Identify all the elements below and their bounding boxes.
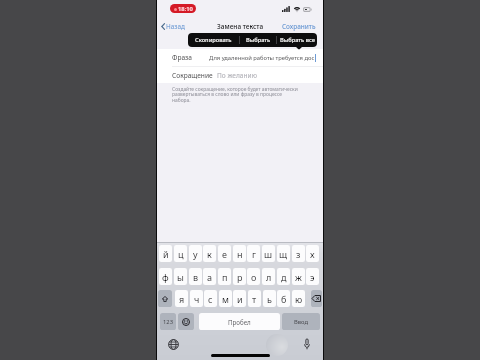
button[interactable]: щ — [277, 245, 290, 262]
button[interactable]: й — [159, 245, 172, 262]
staticText: Для удаленной работы требуется дос — [209, 54, 315, 62]
staticText: ц — [178, 248, 184, 260]
button[interactable]: ы — [174, 268, 187, 285]
button[interactable]: Shift — [158, 290, 172, 307]
staticText: ч — [194, 293, 200, 305]
staticText: й — [163, 248, 169, 260]
button[interactable]: у — [189, 245, 202, 262]
button[interactable]: Пробел — [199, 313, 280, 330]
button[interactable]: с — [204, 290, 217, 307]
button[interactable]: з — [292, 245, 305, 262]
staticText: б — [281, 293, 287, 305]
button[interactable]: ж — [292, 268, 305, 285]
button[interactable]: б — [277, 290, 290, 307]
staticText: ю — [295, 293, 303, 305]
staticText: ж — [295, 271, 302, 283]
button[interactable]: л — [262, 268, 275, 285]
button[interactable]: Change keyboard — [168, 339, 179, 350]
staticText: Скопировать — [195, 36, 232, 44]
button[interactable]: я — [175, 290, 188, 307]
button[interactable]: Backspace — [311, 290, 322, 307]
button[interactable]: ч — [190, 290, 203, 307]
button[interactable]: Выбрать — [240, 33, 276, 47]
staticText: н — [237, 248, 243, 260]
staticText: Пробел — [228, 318, 251, 326]
button[interactable]: а — [203, 268, 216, 285]
button[interactable]: Enter — [282, 313, 320, 330]
button[interactable]: к — [203, 245, 216, 262]
staticText: Выбрать — [246, 36, 271, 44]
staticText: Фраза — [172, 53, 192, 62]
button[interactable]: в — [189, 268, 202, 285]
button[interactable]: Сокращение — [157, 67, 323, 83]
button[interactable]: т — [248, 290, 261, 307]
staticText: ь — [267, 293, 272, 305]
staticText: Выбрать все — [280, 36, 315, 44]
button[interactable]: Emoji — [178, 313, 194, 330]
staticText: Ввод — [294, 318, 308, 326]
staticText: Создайте сокращение, которое будет автом… — [172, 86, 300, 104]
staticText: м — [222, 293, 229, 305]
staticText: щ — [279, 248, 288, 260]
button[interactable]: ф — [159, 268, 172, 285]
staticText: с — [208, 293, 213, 305]
button[interactable]: Сохранить — [282, 22, 316, 31]
staticText: к — [207, 248, 212, 260]
staticText: г — [252, 248, 256, 260]
button[interactable]: Скопировать — [188, 33, 239, 47]
button[interactable]: х — [306, 245, 319, 262]
staticText: ш — [264, 248, 273, 260]
button[interactable]: Выбрать все — [277, 33, 317, 47]
button[interactable]: д — [277, 268, 290, 285]
button[interactable]: е — [218, 245, 231, 262]
staticText: р — [237, 271, 243, 283]
button[interactable]: Dictation — [303, 338, 311, 350]
staticText: и — [237, 293, 243, 305]
staticText: з — [296, 248, 301, 260]
staticText: Замена текста — [217, 22, 264, 31]
staticText: у — [193, 248, 198, 260]
staticText: е — [222, 248, 227, 260]
button[interactable]: э — [306, 268, 319, 285]
staticText: э — [310, 271, 315, 283]
button[interactable]: р — [233, 268, 246, 285]
button[interactable]: Numbers — [160, 313, 176, 330]
staticText: 18:10 — [178, 5, 193, 13]
button[interactable]: и — [233, 290, 246, 307]
staticText: По желанию — [217, 71, 257, 80]
staticText: д — [281, 271, 287, 283]
staticText: л — [266, 271, 272, 283]
button[interactable]: м — [219, 290, 232, 307]
button[interactable]: г — [247, 245, 260, 262]
staticText: ф — [162, 271, 169, 283]
button[interactable]: Фраза — [157, 49, 323, 66]
button[interactable]: ш — [262, 245, 275, 262]
staticText: в — [193, 271, 199, 283]
staticText: о — [251, 271, 257, 283]
staticText: Назад — [166, 22, 185, 31]
staticText: Сокращение — [172, 71, 213, 80]
staticText: ы — [177, 271, 184, 283]
button[interactable]: ю — [292, 290, 305, 307]
staticText: 123 — [163, 318, 173, 326]
button[interactable]: ь — [263, 290, 276, 307]
button[interactable]: Назад — [160, 20, 186, 33]
staticText: т — [252, 293, 257, 305]
button[interactable]: п — [218, 268, 231, 285]
staticText: я — [179, 293, 185, 305]
button[interactable]: о — [247, 268, 260, 285]
staticText: а — [207, 271, 213, 283]
staticText: х — [310, 248, 315, 260]
button[interactable]: ц — [174, 245, 187, 262]
button[interactable]: н — [233, 245, 246, 262]
staticText: п — [222, 271, 228, 283]
